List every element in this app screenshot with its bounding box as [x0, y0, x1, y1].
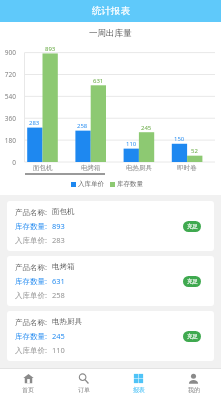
button[interactable]: 充足 — [183, 331, 201, 342]
staticText: 充足 — [187, 278, 198, 285]
staticText: 电热厨具 — [52, 317, 82, 326]
staticText: 电热厨具 — [126, 164, 152, 172]
staticText: 面包机 — [52, 207, 75, 216]
staticText: 产品名称: — [15, 262, 48, 272]
button[interactable]: 统计报表 — [0, 0, 221, 22]
staticText: 245 — [52, 331, 65, 341]
staticText: 150 — [174, 135, 185, 143]
staticText: 180 — [4, 136, 16, 145]
staticText: 893 — [45, 45, 56, 53]
staticText: 充足 — [187, 223, 198, 230]
staticText: 产品名称: — [15, 207, 48, 217]
staticText: 0 — [12, 158, 16, 167]
staticText: 110 — [52, 345, 65, 355]
staticText: 720 — [4, 70, 16, 79]
staticText: 电烤箱 — [81, 164, 101, 172]
staticText: 产品名称: — [15, 317, 48, 327]
staticText: 360 — [4, 114, 16, 123]
button[interactable]: 充足 — [183, 221, 201, 232]
staticText: 283 — [52, 235, 65, 245]
staticText: 即时卷 — [177, 164, 197, 172]
button[interactable]: 报表 — [111, 369, 166, 396]
staticText: 电烤箱 — [52, 262, 75, 271]
staticText: 631 — [93, 77, 104, 85]
staticText: 我的 — [188, 386, 200, 394]
staticText: 入库单价 — [78, 180, 104, 188]
staticText: 入库单价: — [15, 290, 48, 300]
staticText: 充足 — [187, 333, 198, 340]
staticText: 统计报表 — [92, 5, 130, 17]
button[interactable]: 产品名称: — [7, 256, 214, 306]
staticText: 258 — [77, 122, 88, 130]
button[interactable]: 订单 — [56, 369, 111, 396]
staticText: 一周出库量 — [89, 28, 132, 39]
button[interactable]: 产品名称: — [7, 311, 214, 361]
staticText: 283 — [29, 119, 40, 127]
staticText: 900 — [4, 48, 16, 57]
staticText: 库存数量: — [15, 221, 48, 231]
staticText: 245 — [141, 124, 152, 132]
staticText: 258 — [52, 290, 65, 300]
button[interactable]: 我的 — [166, 369, 221, 396]
button[interactable]: 充足 — [183, 276, 201, 287]
button[interactable]: 产品名称: — [7, 201, 214, 251]
staticText: 面包机 — [33, 164, 53, 172]
staticText: 首页 — [22, 386, 34, 394]
staticText: 110 — [126, 140, 137, 148]
staticText: 631 — [52, 276, 65, 286]
staticText: 库存数量 — [117, 180, 143, 188]
staticText: 893 — [52, 221, 65, 231]
staticText: 52 — [191, 147, 198, 155]
staticText: 报表 — [133, 386, 145, 394]
staticText: 订单 — [78, 386, 90, 394]
staticText: 540 — [4, 92, 16, 101]
button[interactable]: 首页 — [0, 369, 56, 396]
staticText: 入库单价: — [15, 345, 48, 355]
staticText: 库存数量: — [15, 276, 48, 286]
staticText: 入库单价: — [15, 235, 48, 245]
staticText: 库存数量: — [15, 331, 48, 341]
